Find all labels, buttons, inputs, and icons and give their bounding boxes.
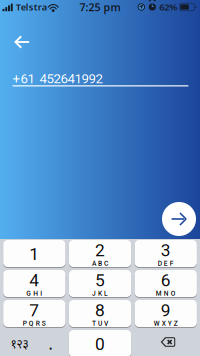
staticText: 3 <box>161 240 171 260</box>
staticText: J K L <box>92 289 108 297</box>
staticText: 7:25 pm <box>79 0 120 14</box>
button[interactable]: 7 <box>3 300 65 327</box>
button[interactable]: 3 <box>135 240 197 267</box>
button[interactable]: Period <box>36 330 65 356</box>
staticText: १२३ <box>10 335 28 351</box>
staticText: 5 <box>95 270 105 290</box>
staticText: 6 <box>161 270 171 290</box>
staticText: 452641992 <box>39 71 102 87</box>
staticText: W X Y Z <box>154 319 178 327</box>
staticText: D E F <box>158 259 174 267</box>
staticText: 8 <box>95 300 105 320</box>
button[interactable]: 5 <box>69 270 131 297</box>
staticText: P Q R S <box>23 319 46 327</box>
staticText: A B C <box>92 259 108 267</box>
staticText: 4 <box>29 270 39 290</box>
button[interactable]: Switch keyboard <box>3 330 36 356</box>
staticText: 62% <box>159 1 177 13</box>
button[interactable]: 6 <box>135 270 197 297</box>
button[interactable]: 8 <box>69 300 131 327</box>
staticText: 2 <box>95 240 105 260</box>
button[interactable]: 2 <box>69 240 131 267</box>
staticText: 9 <box>161 300 171 320</box>
button[interactable]: 0 <box>69 330 131 356</box>
staticText: G H I <box>26 289 42 297</box>
button[interactable]: 4 <box>3 270 65 297</box>
staticText: M N O <box>156 289 176 297</box>
button[interactable]: 9 <box>135 300 197 327</box>
staticText: +61 <box>12 71 34 87</box>
staticText: . <box>48 333 52 354</box>
staticText: Telstra <box>16 1 47 13</box>
staticText: 1 <box>29 244 39 264</box>
button[interactable]: Back <box>0 26 40 58</box>
staticText: 7 <box>29 300 39 320</box>
staticText: 0 <box>95 334 105 354</box>
button[interactable]: Continue <box>162 202 196 236</box>
button[interactable]: Delete <box>135 330 197 356</box>
button[interactable]: 1 <box>3 240 65 267</box>
staticText: T U V <box>92 319 108 327</box>
